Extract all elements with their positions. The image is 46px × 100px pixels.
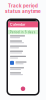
staticText: Period in 5 days xyxy=(10,30,36,34)
staticText: status anytime xyxy=(5,8,41,14)
staticText: Calendar xyxy=(10,22,25,27)
staticText: Track period xyxy=(8,3,38,8)
